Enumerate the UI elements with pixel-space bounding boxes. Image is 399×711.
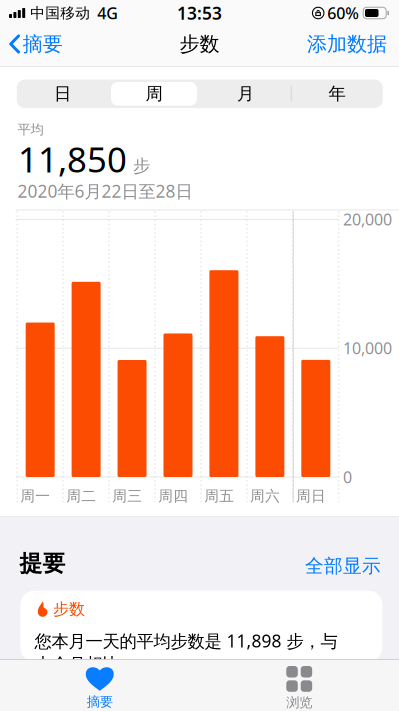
button[interactable]: 添加数据 [307, 26, 399, 62]
staticText: 月 [237, 83, 254, 104]
staticText: 步 [133, 155, 150, 177]
staticText: 全部显示 [305, 554, 381, 577]
staticText: 平均 [17, 121, 43, 138]
staticText: 20,000 [343, 209, 392, 230]
staticText: 周 [145, 83, 162, 104]
button[interactable]: 周 [108, 79, 200, 108]
staticText: 10,000 [343, 337, 392, 359]
button[interactable]: 全部显示 [271, 555, 381, 577]
staticText: 周二 [66, 487, 96, 505]
staticText: 周日 [296, 487, 326, 505]
staticText: 中国移动 [30, 4, 90, 22]
staticText: 步数 [53, 599, 85, 619]
button[interactable]: 摘要 [0, 26, 63, 62]
staticText: 摘要 [23, 32, 63, 56]
staticText: 周一 [20, 487, 50, 505]
button[interactable]: 摘要 [0, 666, 199, 708]
staticText: 周三 [112, 487, 142, 505]
staticText: 周四 [158, 487, 188, 505]
staticText: 2020年6月22日至28日 [17, 179, 192, 202]
staticText: 浏览 [286, 694, 312, 711]
staticText: 周五 [204, 487, 234, 505]
staticText: 11,850 [18, 136, 127, 182]
staticText: 添加数据 [307, 32, 387, 56]
staticText: 提要 [19, 550, 65, 577]
staticText: 60% [327, 2, 359, 24]
staticText: 年 [328, 83, 345, 104]
staticText: 4G [97, 2, 118, 24]
button[interactable]: 浏览 [199, 666, 399, 708]
staticText: 日 [54, 83, 71, 104]
staticText: 0 [343, 466, 352, 488]
staticText: 摘要 [87, 693, 113, 710]
staticText: 周六 [250, 487, 280, 505]
staticText: 您本月一天的平均步数是 11,898 步，与 [35, 629, 338, 652]
staticText: 步数 [179, 32, 219, 56]
staticText: 上个月相比… [35, 652, 134, 675]
button[interactable]: 月 [200, 79, 291, 108]
staticText: 13:53 [177, 1, 222, 24]
button[interactable]: 步数 [20, 591, 382, 662]
button[interactable]: 年 [291, 79, 383, 108]
button[interactable]: 日 [17, 79, 108, 108]
